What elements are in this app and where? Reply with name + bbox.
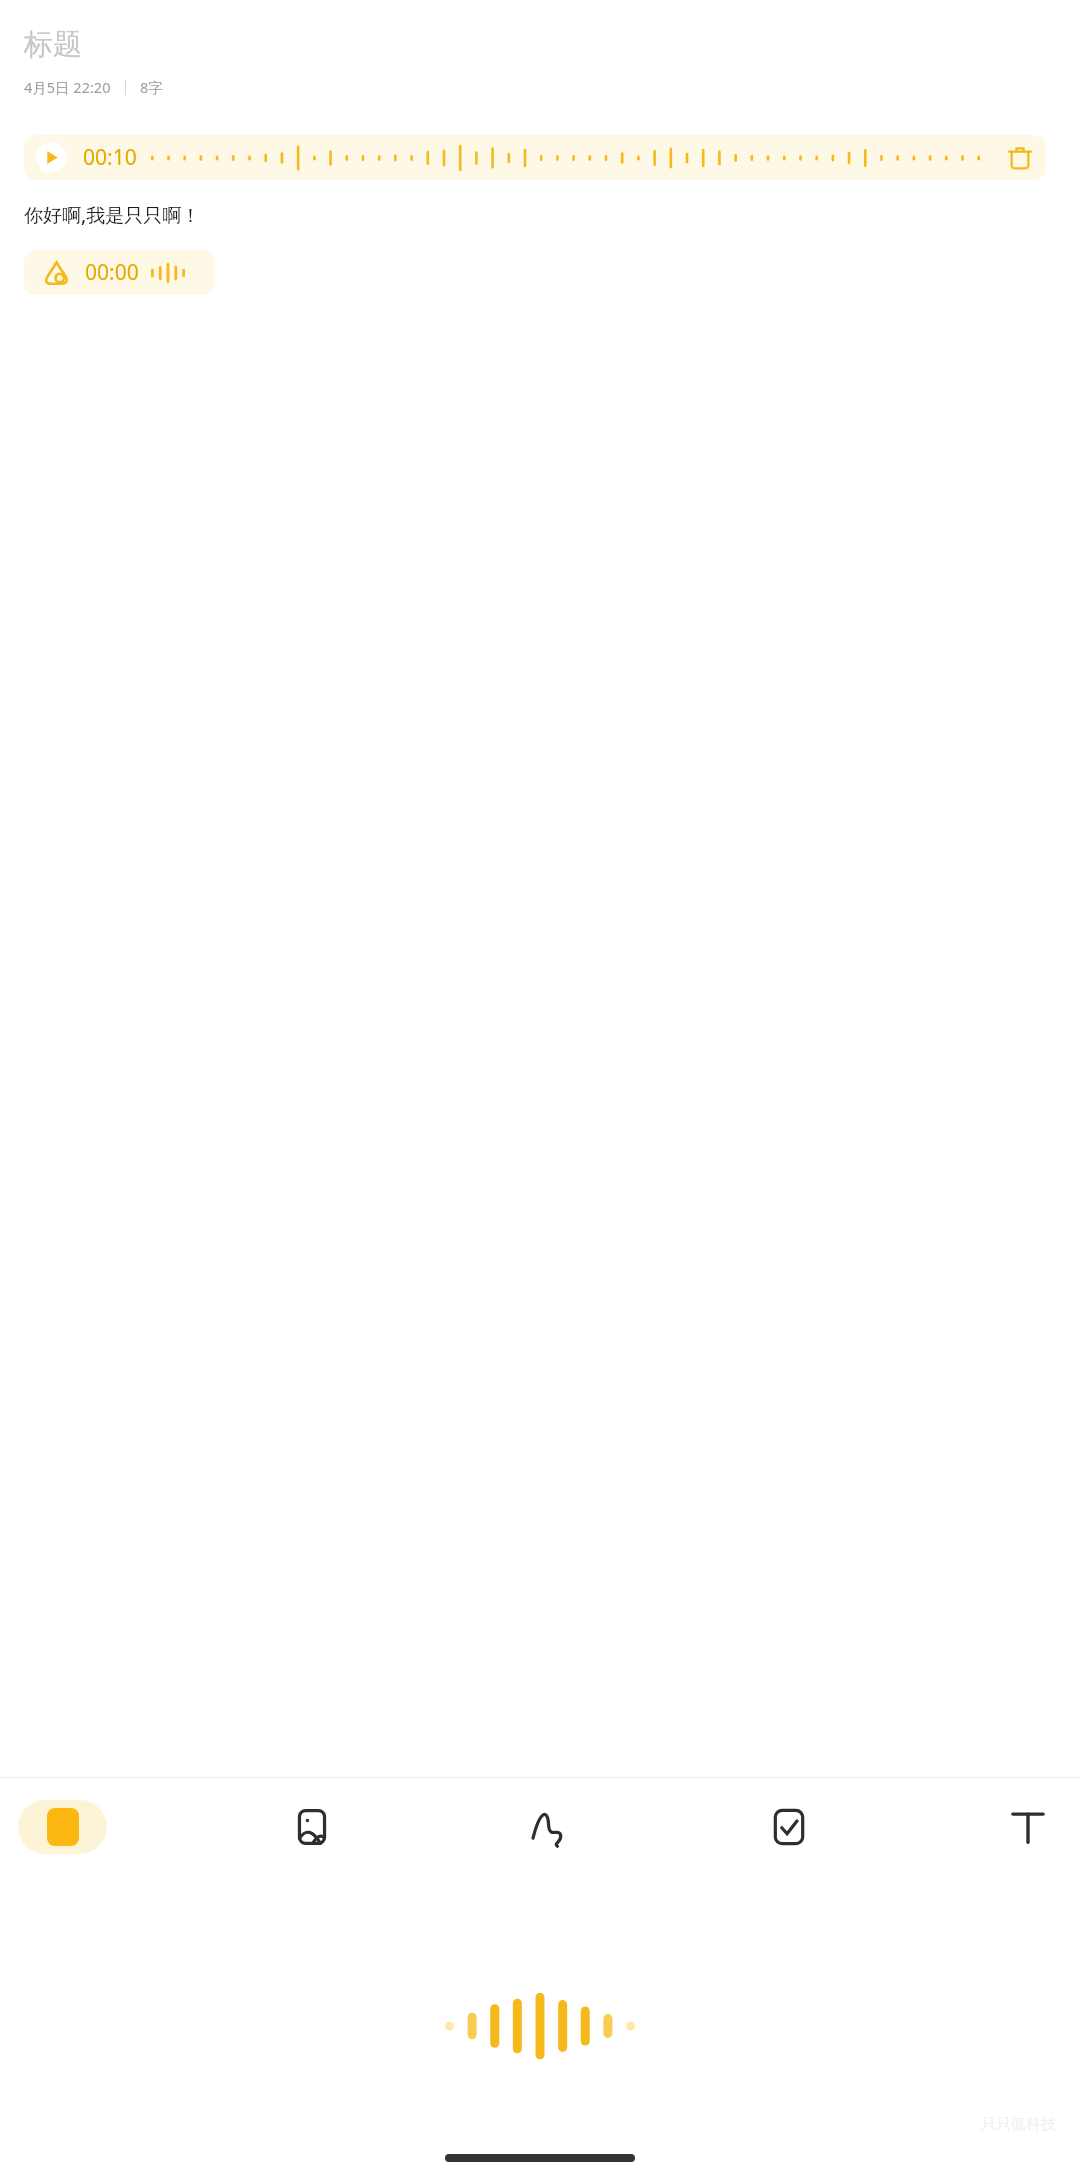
staticText: 你好啊,我是只只啊！ — [24, 202, 201, 228]
button[interactable]: Handwriting — [517, 1793, 585, 1861]
staticText: 00:10 — [83, 143, 137, 172]
button[interactable]: Checklist — [755, 1793, 823, 1861]
staticText: 00:00 — [85, 258, 139, 287]
button[interactable]: Play — [24, 135, 1046, 180]
staticText: 4月5日 22:20 — [24, 77, 111, 97]
button[interactable]: Stop recording — [18, 1800, 107, 1854]
button[interactable]: Delete — [1000, 138, 1040, 178]
button[interactable]: Text style — [994, 1793, 1062, 1861]
other: Recording — [44, 260, 69, 285]
staticText: 8字 — [140, 77, 163, 97]
button[interactable]: Recording — [24, 250, 215, 295]
button[interactable]: Play — [36, 142, 67, 173]
button[interactable]: Insert image — [278, 1793, 346, 1861]
staticText: 标题 — [24, 26, 82, 63]
staticText: 只只侃科技 — [981, 2115, 1056, 2134]
